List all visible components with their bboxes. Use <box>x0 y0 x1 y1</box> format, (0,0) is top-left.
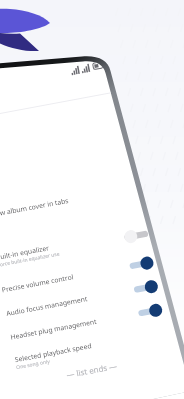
staticText: Precise volume control <box>1 272 74 294</box>
button[interactable]: Built-in equalizer <box>0 214 165 281</box>
button[interactable] <box>137 303 163 320</box>
button[interactable] <box>133 279 159 296</box>
staticText: — list ends — <box>65 360 118 380</box>
staticText: Headset plug management <box>10 317 98 342</box>
staticText: Audio focus management <box>5 294 89 318</box>
button[interactable]: Show album cover in tabs <box>0 172 155 230</box>
button[interactable]: Headset plug management <box>0 294 178 352</box>
button[interactable] <box>123 227 149 244</box>
button[interactable]: Audio focus management <box>0 271 173 329</box>
button[interactable] <box>128 256 154 273</box>
staticText: One song only <box>16 358 50 371</box>
staticText: Force built-in equalizer use <box>0 250 61 269</box>
staticText: Selected playback speed <box>14 341 92 364</box>
staticText: Built-in equalizer <box>0 243 50 262</box>
staticText: Show album cover in tabs <box>0 196 69 220</box>
button[interactable]: Precise volume control <box>0 247 169 305</box>
button[interactable]: Selected playback speed <box>0 318 183 382</box>
